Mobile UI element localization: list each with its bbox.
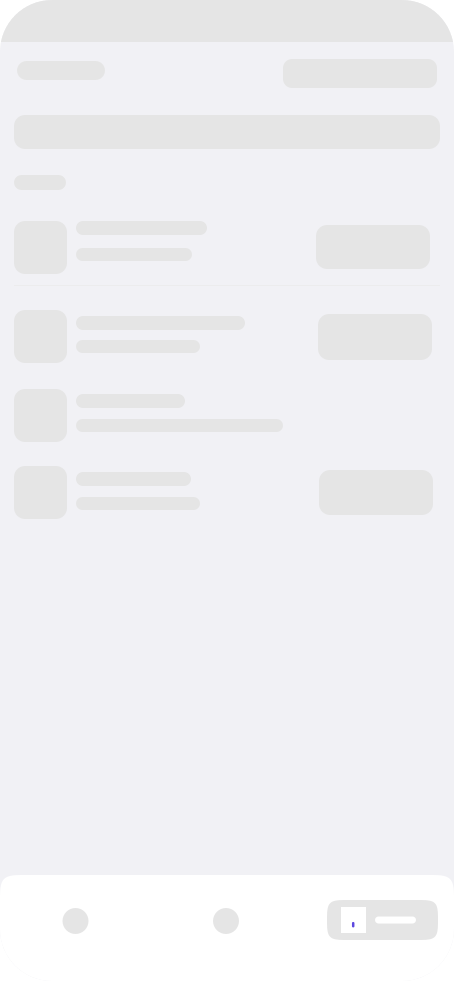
button[interactable]: List item	[14, 466, 454, 521]
button[interactable]: List item	[14, 365, 454, 466]
button[interactable]: Account	[327, 888, 438, 940]
button[interactable]: Title	[17, 59, 105, 80]
button[interactable]: Discover	[151, 888, 301, 954]
button[interactable]: Home	[0, 888, 151, 954]
button[interactable]: List item	[14, 221, 454, 285]
button[interactable]: List item	[14, 286, 454, 365]
